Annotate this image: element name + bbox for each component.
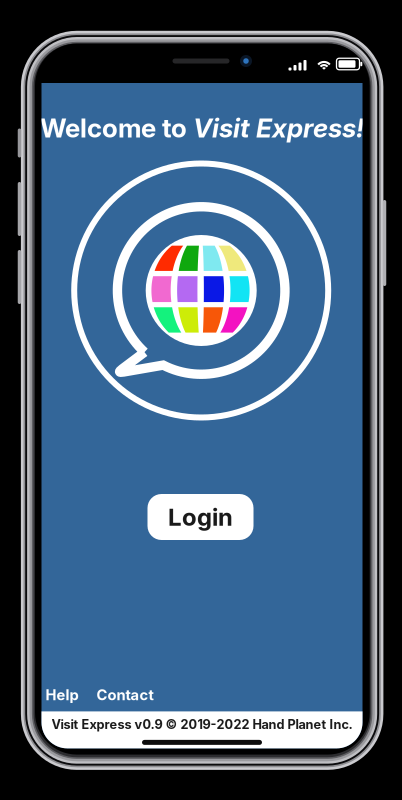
staticText: Visit Express v0.9 © 2019-2022 Hand Plan… xyxy=(51,717,352,732)
staticText: Visit Express! xyxy=(193,112,364,144)
button[interactable]: Help xyxy=(45,686,78,704)
button[interactable]: Contact xyxy=(96,686,153,704)
staticText: Help xyxy=(45,686,78,704)
staticText: Login xyxy=(168,502,233,531)
button[interactable]: Login xyxy=(147,494,253,540)
staticText: Contact xyxy=(96,686,153,704)
staticText: Welcome to xyxy=(40,112,193,144)
